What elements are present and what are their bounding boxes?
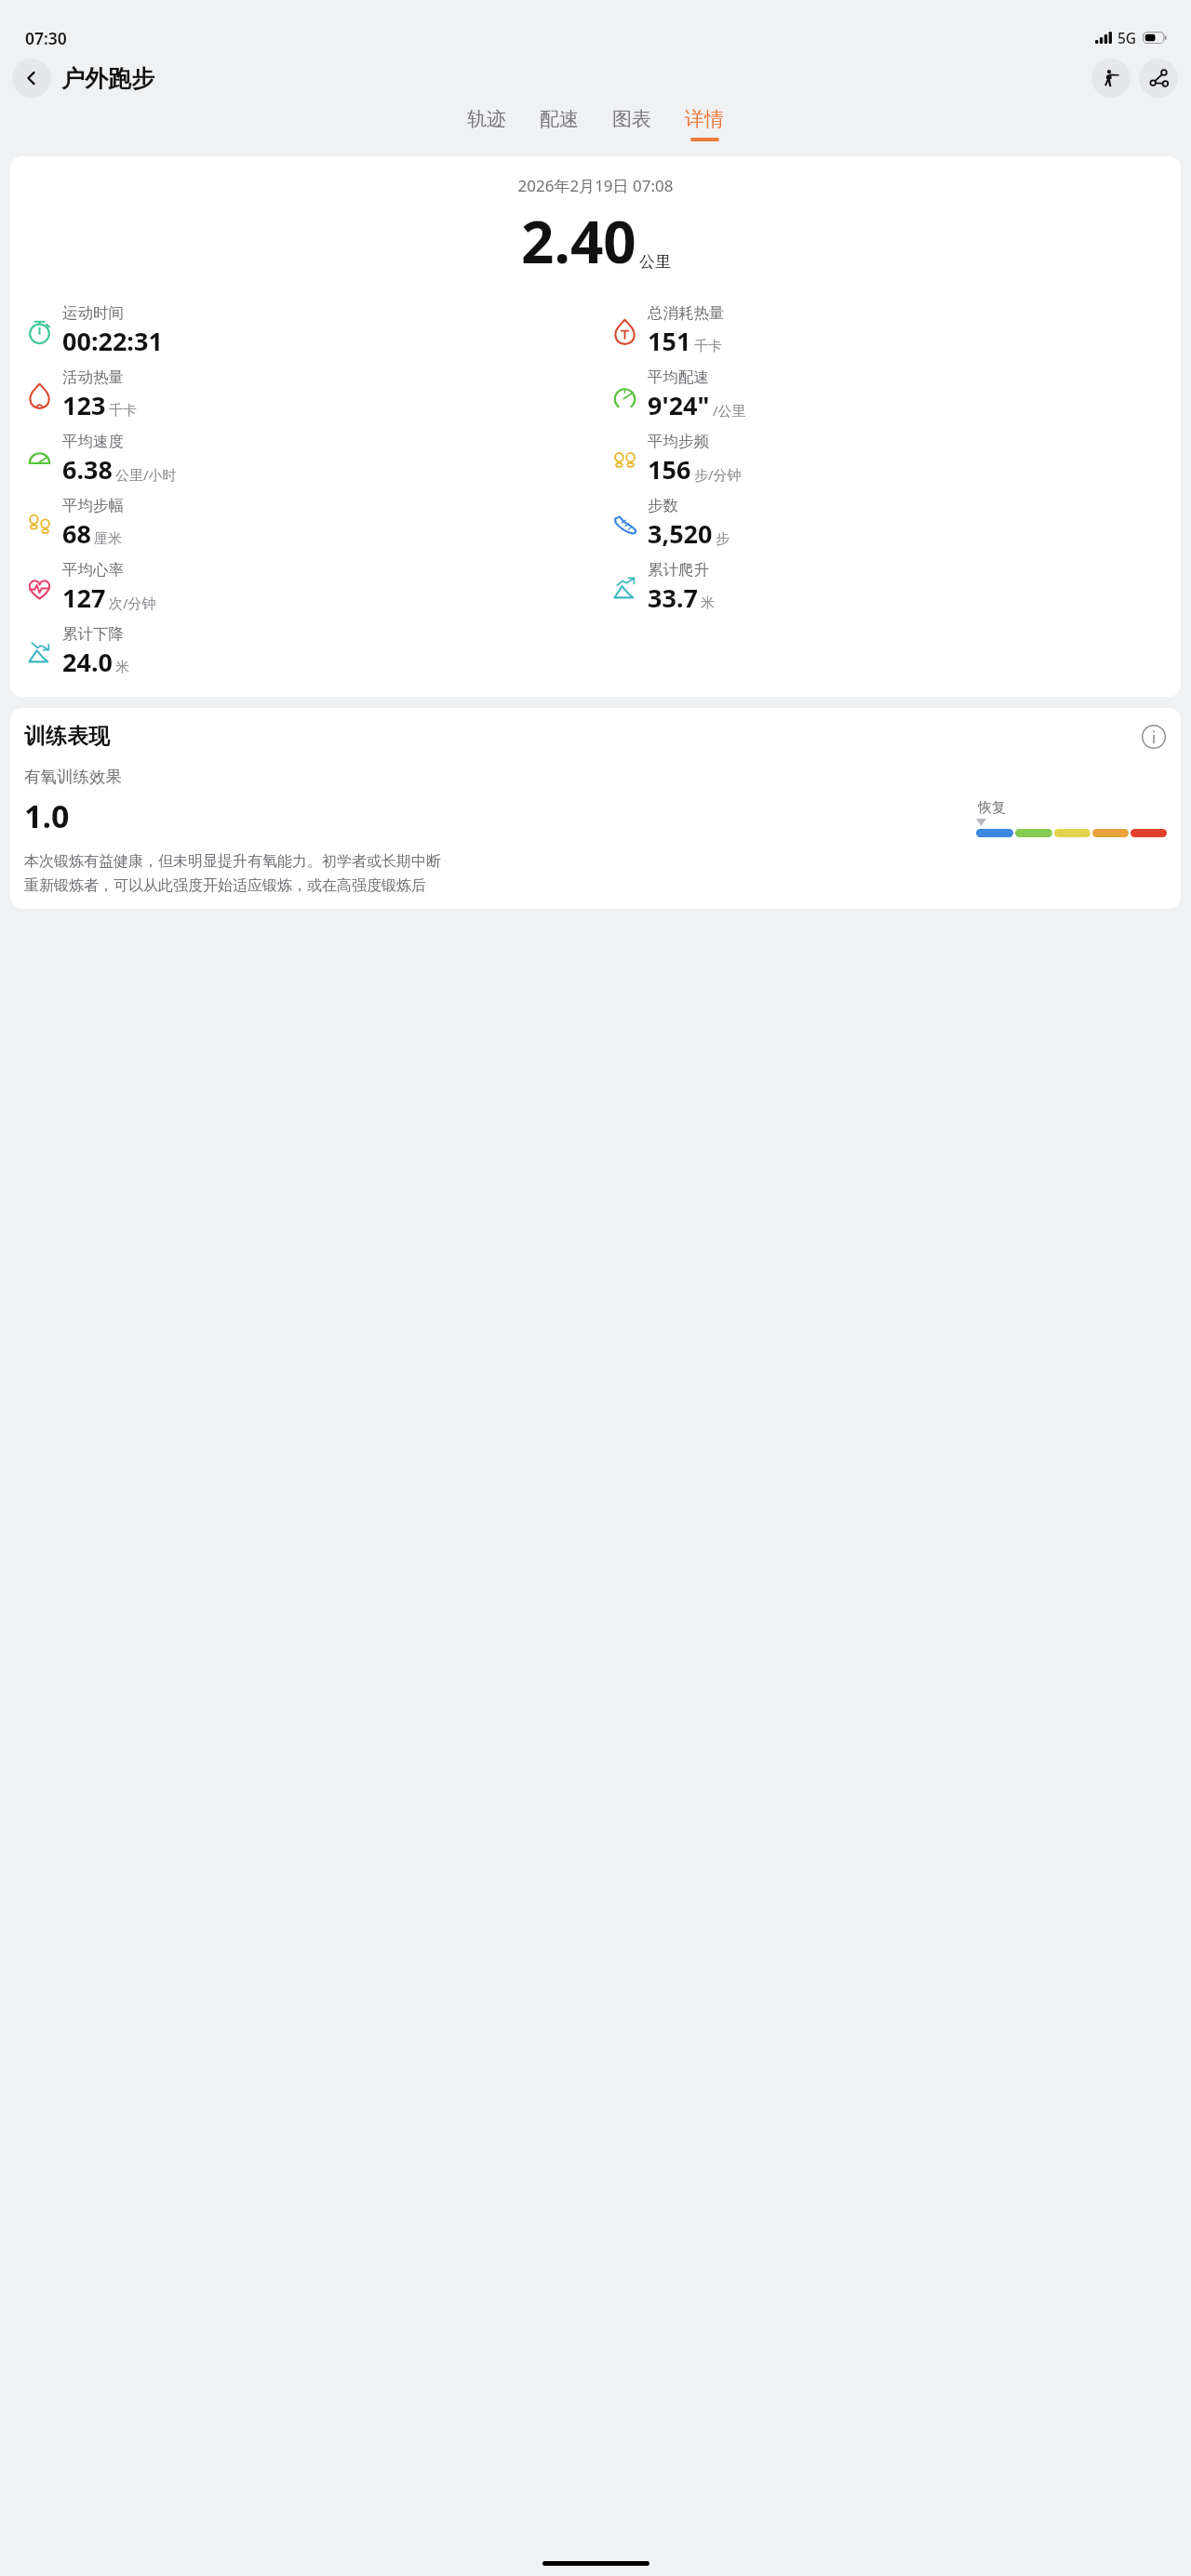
staticText: 千卡 <box>109 402 137 420</box>
staticText: 次/分钟 <box>109 594 156 612</box>
button[interactable]: 平均步频 <box>595 427 1181 491</box>
button[interactable]: 步数 <box>595 491 1181 555</box>
staticText: 活动热量 <box>62 367 124 387</box>
staticText: 平均心率 <box>62 560 124 580</box>
staticText: 总消耗热量 <box>648 303 725 323</box>
staticText: 公里 <box>639 252 671 272</box>
staticText: 3,520 <box>648 516 713 551</box>
button[interactable]: 运动时间 <box>10 299 595 363</box>
button[interactable]: 分享 <box>1139 59 1178 98</box>
button[interactable]: 运动类型 <box>1091 59 1131 98</box>
button[interactable]: 活动热量 <box>10 363 595 427</box>
staticText: 训练表现 <box>24 723 110 750</box>
staticText: 厘米 <box>94 530 122 548</box>
button[interactable]: 轨迹 <box>462 105 511 143</box>
button[interactable]: 说明 <box>1141 724 1167 750</box>
staticText: 07:30 <box>25 27 67 49</box>
staticText: 本次锻炼有益健康，但未明显提升有氧能力。初学者或长期中断 重新锻炼者，可以从此强… <box>24 852 441 894</box>
staticText: 轨迹 <box>467 107 506 131</box>
button[interactable]: 平均步幅 <box>10 491 595 555</box>
staticText: 平均速度 <box>62 432 124 451</box>
staticText: 24.0 <box>62 645 113 679</box>
staticText: 累计爬升 <box>648 560 709 580</box>
staticText: 户外跑步 <box>61 64 154 93</box>
staticText: 详情 <box>685 107 724 131</box>
staticText: 恢复 <box>978 799 1006 817</box>
staticText: 平均步幅 <box>62 496 124 515</box>
staticText: 00:22:31 <box>62 324 163 358</box>
staticText: 5G <box>1117 28 1137 47</box>
staticText: 127 <box>62 581 106 615</box>
staticText: 累计下降 <box>62 624 124 644</box>
button[interactable]: 累计爬升 <box>595 555 1181 620</box>
staticText: 2026年2月19日 07:08 <box>10 175 1181 196</box>
staticText: 68 <box>62 516 91 551</box>
staticText: 2.40 <box>521 202 636 280</box>
staticText: 9'24" <box>648 388 710 422</box>
staticText: 步/分钟 <box>694 465 742 484</box>
button[interactable]: 平均配速 <box>595 363 1181 427</box>
staticText: 123 <box>62 388 106 422</box>
staticText: 运动时间 <box>62 303 124 323</box>
staticText: 151 <box>648 324 691 358</box>
button[interactable]: 平均心率 <box>10 555 595 620</box>
staticText: 平均配速 <box>648 367 709 387</box>
staticText: /公里 <box>713 401 746 420</box>
staticText: 有氧训练效果 <box>24 767 122 787</box>
staticText: 平均步频 <box>648 432 709 451</box>
staticText: 米 <box>115 659 129 676</box>
staticText: 千卡 <box>694 338 722 355</box>
button[interactable]: 平均速度 <box>10 427 595 491</box>
staticText: 33.7 <box>648 581 698 615</box>
staticText: 1.0 <box>24 794 70 837</box>
staticText: 6.38 <box>62 452 113 487</box>
staticText: 公里/小时 <box>115 465 177 484</box>
button[interactable]: 配速 <box>535 105 583 143</box>
staticText: 步数 <box>648 496 678 515</box>
button[interactable]: 返回 <box>12 59 51 98</box>
staticText: 配速 <box>540 107 579 131</box>
staticText: 图表 <box>612 107 651 131</box>
button[interactable]: 总消耗热量 <box>595 299 1181 363</box>
button[interactable]: 图表 <box>608 105 656 143</box>
staticText: 米 <box>701 594 715 612</box>
staticText: 156 <box>648 452 691 487</box>
button[interactable]: 累计下降 <box>10 620 595 684</box>
staticText: 步 <box>716 530 729 548</box>
button[interactable]: 详情 <box>680 105 729 143</box>
